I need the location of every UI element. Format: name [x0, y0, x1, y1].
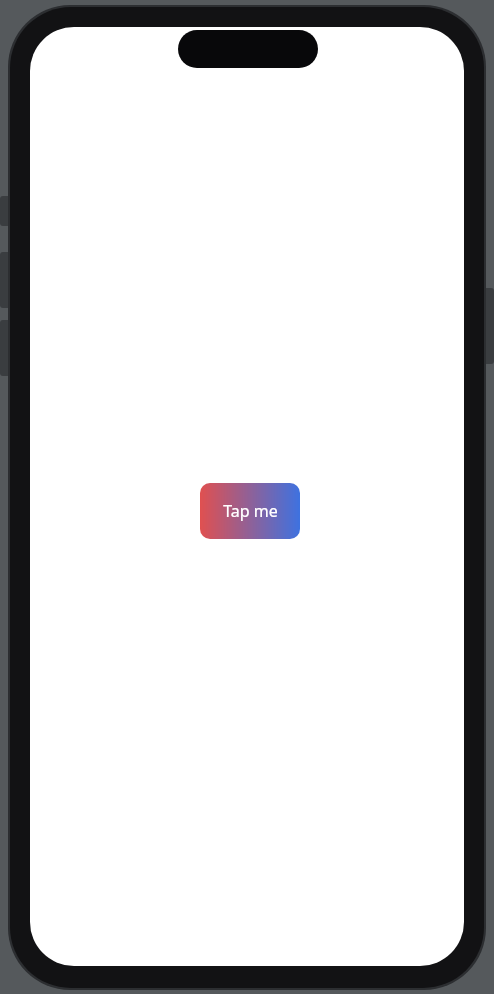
staticText: Tap me — [223, 500, 278, 522]
button[interactable]: Tap me — [200, 483, 300, 539]
